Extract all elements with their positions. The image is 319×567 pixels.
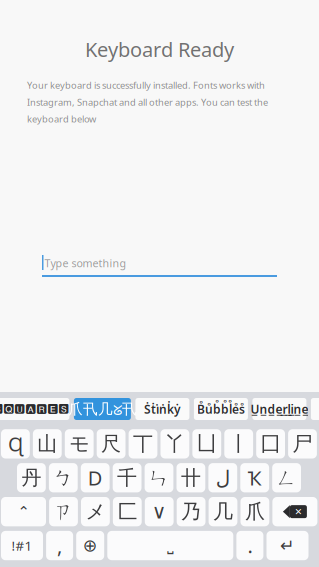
button[interactable]: ↵ [266,531,308,560]
staticText: , [57,532,62,559]
button[interactable]: 丨 [224,429,253,458]
staticText: ㄣ [149,465,169,490]
staticText: keyboard below [27,113,96,125]
button[interactable]: 山 [33,429,62,458]
button[interactable]: メ [81,497,110,526]
staticText: モ [69,432,89,456]
staticText: 囗 [261,432,281,456]
staticText: 丫 [165,432,185,456]
button[interactable]: 丅 [129,429,157,458]
staticText: 凵 [197,432,217,456]
staticText: !#1 [11,537,32,554]
button[interactable]: !#1 [1,531,43,560]
staticText: 山 [37,432,57,456]
staticText: Ҡ [248,464,262,491]
button[interactable]: ⊕ [76,531,104,560]
staticText: 尸 [292,432,312,456]
staticText: 丹 [21,465,41,490]
button[interactable]: 匚 [113,497,142,526]
button[interactable]: 囗 [256,429,285,458]
staticText: D [88,464,103,491]
staticText: ✕ [294,506,302,517]
staticText: ⎵ [167,538,173,553]
button[interactable]: ㄅ [49,463,78,492]
button[interactable]: Ҡ [240,463,269,492]
staticText: Ɋ [8,431,23,457]
button[interactable]: 丫 [160,429,189,458]
button[interactable]: Ṡṫi̇ṅk̇ẏ [135,398,189,420]
staticText: ﻝ [215,466,230,489]
staticText: メ [85,499,105,524]
button[interactable]: Ɋ [1,429,30,458]
staticText: 几 [213,499,233,524]
staticText: . [247,532,252,559]
button[interactable]: ⎵ [107,531,233,560]
staticText: Instagram, Snapchat and all other apps. … [27,96,268,108]
staticText: ∨ [152,500,167,523]
staticText: ㄥ [277,465,297,490]
staticText: 爪 [245,499,265,524]
staticText: Type something [44,256,126,270]
staticText: 爪卂几ᘜ卂 [68,400,137,418]
button[interactable]: モ [65,429,94,458]
staticText: 匚 [117,499,137,524]
staticText: ㄗ [53,499,73,524]
staticText: 卄 [181,465,201,490]
button[interactable]: 千 [113,463,141,492]
button[interactable]: ㄥ [272,463,301,492]
button[interactable]: U̲n̲d̲e̲r̲l̲i̲n̲e̲ [252,398,306,420]
button[interactable]: 尺 [97,429,125,458]
staticText: 乃 [181,499,201,524]
staticText: ⌃ [17,503,29,520]
staticText: ⊕ [83,536,98,555]
button[interactable]: ⌃ [1,497,46,526]
button[interactable]: D [81,463,110,492]
button[interactable]: 乃 [177,497,205,526]
button[interactable]: 尸 [288,429,317,458]
staticText: 丅 [133,432,153,456]
button[interactable]: . [236,531,263,560]
staticText: 丨 [229,432,249,456]
staticText: ↵ [280,536,295,555]
staticText: Bͦuͦbͦbͦlͦeͦsͦ [197,401,245,417]
button[interactable]: Backspace [272,497,317,526]
staticText: Keyboard Ready [85,36,234,63]
button[interactable]: ㄣ [145,463,173,492]
staticText: 尺 [101,432,121,456]
button[interactable]: ㄗ [49,497,78,526]
staticText: Ṡṫi̇ṅk̇ẏ [144,401,181,417]
staticText: U̲n̲d̲e̲r̲l̲i̲n̲e̲ [250,401,308,417]
button[interactable]: 几 [209,497,237,526]
button[interactable]: ﻝ [208,463,237,492]
staticText: 千 [117,465,137,490]
button[interactable]: , [46,531,73,560]
button[interactable]: Bͦuͦbͦbͦlͦeͦsͦ [194,398,248,420]
staticText: ㄅ [53,465,73,490]
button[interactable]: 𝐁𝐨𝐥𝐝 [311,398,319,420]
button[interactable]: 凵 [192,429,221,458]
staticText: 🆂🆀🆄🅰🆁🅴🆂 [0,403,69,415]
button[interactable]: 丹 [17,463,46,492]
button[interactable]: 爪 [240,497,269,526]
button[interactable]: 卄 [176,463,205,492]
button[interactable]: ∨ [145,497,174,526]
button[interactable]: 爪卂几ᘜ卂 [74,398,131,420]
button[interactable]: 🆂🆀🆄🅰🆁🅴🆂 [0,398,69,420]
staticText: Your keyboard is successfully installed.… [27,79,265,91]
